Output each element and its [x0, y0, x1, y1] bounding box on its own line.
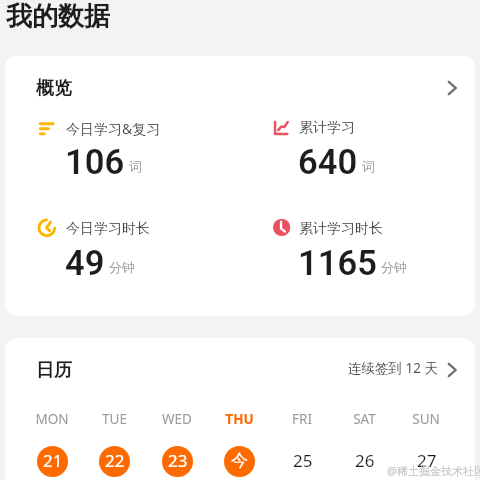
staticText: 我的数据 — [6, 0, 110, 33]
button[interactable]: FRI — [271, 409, 333, 477]
staticText: FRI — [292, 410, 312, 428]
button[interactable]: MON — [21, 409, 83, 477]
staticText: 26 — [355, 449, 375, 472]
staticText: 今日学习时长 — [66, 220, 150, 238]
button[interactable]: 日历 — [5, 338, 475, 402]
staticText: 词 — [362, 158, 375, 174]
staticText: WED — [162, 410, 192, 428]
staticText: SAT — [353, 410, 376, 428]
staticText: 106 — [65, 142, 125, 182]
staticText: 22 — [105, 449, 125, 472]
staticText: 累计学习 — [299, 119, 355, 137]
other: More — [443, 361, 461, 379]
staticText: SUN — [412, 410, 440, 428]
staticText: 27 — [417, 449, 437, 472]
button[interactable]: WED — [146, 409, 208, 477]
staticText: 今 — [231, 450, 248, 471]
staticText: 词 — [129, 158, 142, 174]
staticText: 分钟 — [109, 259, 135, 275]
button[interactable]: 概览 — [5, 56, 475, 120]
staticText: 25 — [293, 449, 313, 472]
staticText: 640 — [298, 142, 358, 182]
staticText: 1165 — [298, 243, 377, 283]
staticText: 23 — [168, 449, 188, 472]
staticText: 累计学习时长 — [299, 220, 383, 238]
staticText: 21 — [43, 449, 63, 472]
staticText: 今日学习&复习 — [66, 119, 161, 138]
other: More — [443, 79, 461, 97]
button[interactable]: TUE — [83, 409, 145, 477]
staticText: @稀土掘金技术社区 — [387, 463, 480, 478]
staticText: 概览 — [36, 77, 72, 100]
staticText: 49 — [65, 243, 105, 283]
staticText: MON — [35, 410, 69, 428]
staticText: 日历 — [36, 359, 72, 382]
staticText: 连续签到 12 天 — [348, 359, 438, 377]
staticText: TUE — [102, 410, 127, 428]
button[interactable]: THU — [208, 409, 270, 477]
button[interactable]: SAT — [333, 409, 395, 477]
button[interactable]: SUN — [395, 409, 457, 477]
staticText: 分钟 — [381, 259, 407, 275]
staticText: THU — [225, 410, 254, 428]
